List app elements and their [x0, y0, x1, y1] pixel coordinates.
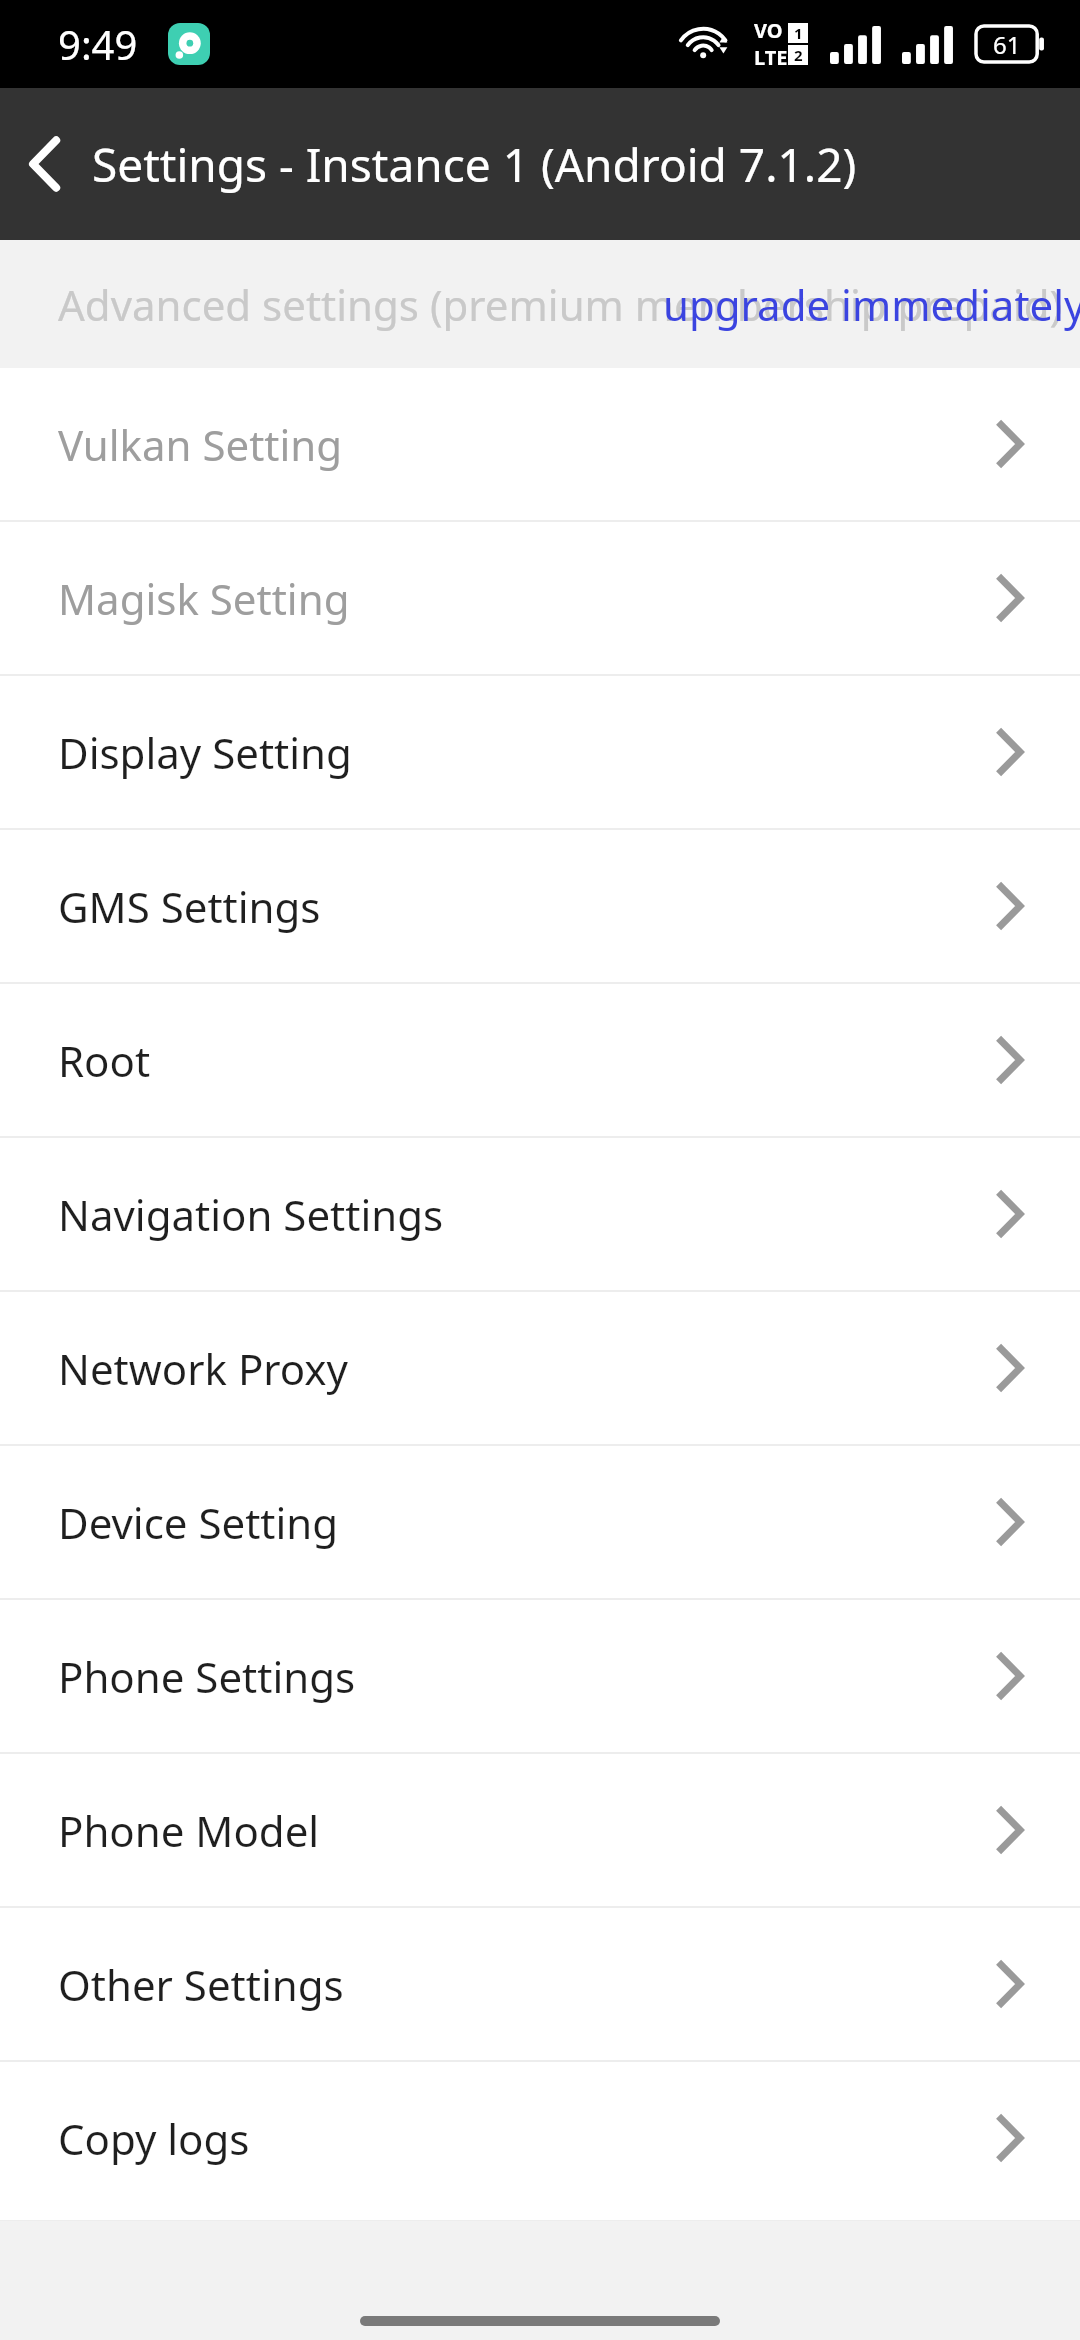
button[interactable]: GMS Settings — [0, 830, 1080, 982]
staticText: Phone Settings — [58, 1648, 996, 1705]
button[interactable]: Copy logs — [0, 2062, 1080, 2214]
staticText: Copy logs — [58, 2110, 996, 2167]
button[interactable]: Root — [0, 984, 1080, 1136]
button[interactable]: Device Setting — [0, 1446, 1080, 1598]
staticText: 2 — [794, 45, 803, 65]
button[interactable]: Phone Model — [0, 1754, 1080, 1906]
staticText: 9:49 — [58, 17, 138, 71]
staticText: Advanced settings (premium membership pr… — [58, 276, 1063, 333]
staticText: Root — [58, 1032, 996, 1089]
staticText: Display Setting — [58, 724, 996, 781]
button[interactable]: Phone Settings — [0, 1600, 1080, 1752]
staticText: 1 — [794, 23, 803, 43]
staticText: Network Proxy — [58, 1340, 996, 1397]
staticText: Phone Model — [58, 1802, 996, 1859]
button[interactable]: Vulkan Setting — [0, 368, 1080, 520]
button[interactable]: upgrade immediately — [663, 276, 1080, 333]
staticText: GMS Settings — [58, 878, 996, 935]
staticText: Magisk Setting — [58, 570, 996, 627]
button[interactable]: Other Settings — [0, 1908, 1080, 2060]
staticText: Vulkan Setting — [58, 416, 996, 473]
staticText: VO — [754, 17, 783, 44]
staticText: Other Settings — [58, 1956, 996, 2013]
button[interactable]: Back — [0, 109, 90, 219]
button[interactable]: Magisk Setting — [0, 522, 1080, 674]
staticText: Navigation Settings — [58, 1186, 996, 1243]
staticText: Settings - Instance 1 (Android 7.1.2) — [92, 133, 857, 196]
staticText: 61 — [993, 28, 1021, 61]
staticText: LTE — [754, 44, 788, 71]
staticText: Device Setting — [58, 1494, 996, 1551]
button[interactable]: Navigation Settings — [0, 1138, 1080, 1290]
button[interactable]: Display Setting — [0, 676, 1080, 828]
button[interactable]: Network Proxy — [0, 1292, 1080, 1444]
